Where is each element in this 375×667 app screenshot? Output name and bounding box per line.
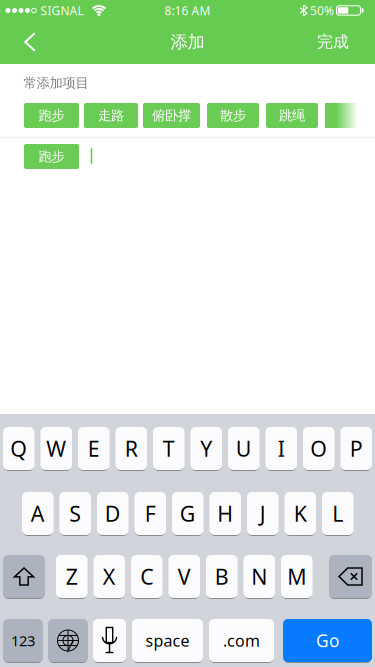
- staticText: .com: [223, 630, 260, 651]
- staticText: R: [125, 434, 138, 463]
- staticText: F: [145, 499, 156, 528]
- staticText: S: [69, 499, 81, 528]
- staticText: 50%: [310, 2, 334, 18]
- staticText: 123: [11, 631, 35, 650]
- staticText: Q: [10, 434, 27, 463]
- staticText: O: [310, 434, 327, 463]
- staticText: I: [278, 434, 285, 463]
- staticText: 8:16 AM: [164, 2, 210, 18]
- staticText: X: [103, 562, 116, 591]
- staticText: W: [46, 434, 66, 463]
- staticText: B: [215, 562, 229, 591]
- staticText: E: [88, 434, 100, 463]
- staticText: T: [163, 434, 175, 463]
- staticText: SIGNAL: [40, 2, 83, 18]
- staticText: 走路: [98, 107, 124, 124]
- staticText: 常添加项目: [23, 75, 88, 91]
- staticText: M: [287, 562, 306, 591]
- staticText: C: [140, 562, 153, 591]
- staticText: V: [178, 562, 191, 591]
- staticText: N: [251, 562, 267, 591]
- staticText: 俯卧撑: [152, 107, 191, 124]
- staticText: 跑步: [38, 107, 64, 124]
- staticText: 跳绳: [279, 107, 305, 124]
- staticText: L: [332, 499, 343, 528]
- staticText: space: [145, 630, 189, 651]
- staticText: J: [260, 499, 266, 528]
- staticText: G: [180, 499, 196, 528]
- staticText: 添加: [170, 31, 204, 53]
- staticText: Y: [200, 434, 212, 463]
- staticText: 完成: [317, 32, 349, 52]
- staticText: Go: [316, 629, 339, 652]
- staticText: U: [236, 434, 252, 463]
- staticText: P: [350, 434, 363, 463]
- staticText: 跑步: [38, 148, 64, 165]
- staticText: A: [31, 499, 45, 528]
- staticText: 散步: [220, 107, 246, 124]
- staticText: D: [105, 499, 121, 528]
- staticText: K: [294, 499, 307, 528]
- staticText: Z: [66, 562, 78, 591]
- staticText: H: [217, 499, 233, 528]
